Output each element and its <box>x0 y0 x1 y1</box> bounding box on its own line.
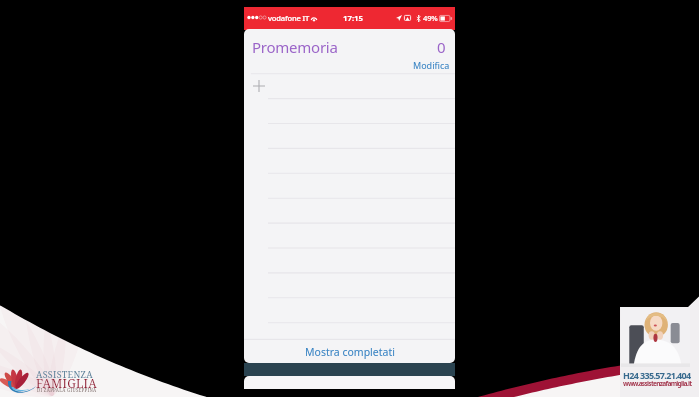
staticText: 0 <box>437 37 446 57</box>
staticText: Mostra completati <box>305 345 395 359</box>
button[interactable]: Mostra completati <box>244 340 455 363</box>
staticText: vodafone IT <box>268 13 310 23</box>
staticText: www.assistenzafamiglia.it <box>623 379 692 388</box>
staticText: 49% <box>423 13 438 23</box>
staticText: ASSISTENZA <box>36 368 93 380</box>
button[interactable]: Modifica <box>413 59 450 71</box>
staticText: Modifica <box>413 59 450 71</box>
staticText: Promemoria <box>252 37 338 57</box>
staticText: H24 335.57.21.404 <box>623 369 691 381</box>
staticText: DI ZAPPALA GIUSEPPINA <box>37 387 97 393</box>
button[interactable]: Aggiungi promemoria <box>244 74 455 99</box>
staticText: 17:15 <box>343 13 364 24</box>
staticText: FAMIGLIA <box>36 375 97 391</box>
